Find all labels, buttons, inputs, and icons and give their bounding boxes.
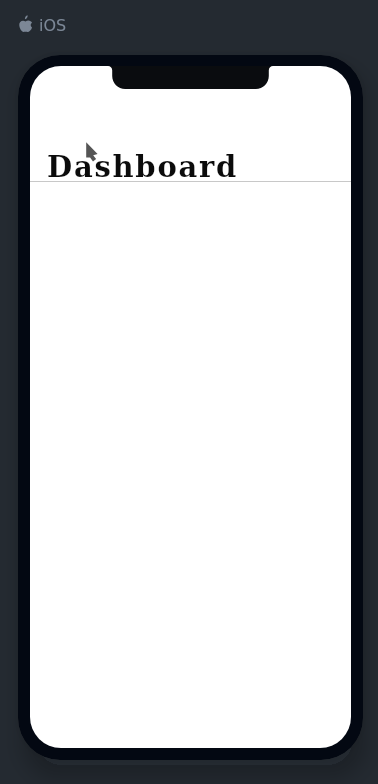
- staticText: iOS: [39, 16, 67, 35]
- button[interactable]: Dashboard: [47, 150, 239, 184]
- button[interactable]: iOS platform: [19, 15, 67, 34]
